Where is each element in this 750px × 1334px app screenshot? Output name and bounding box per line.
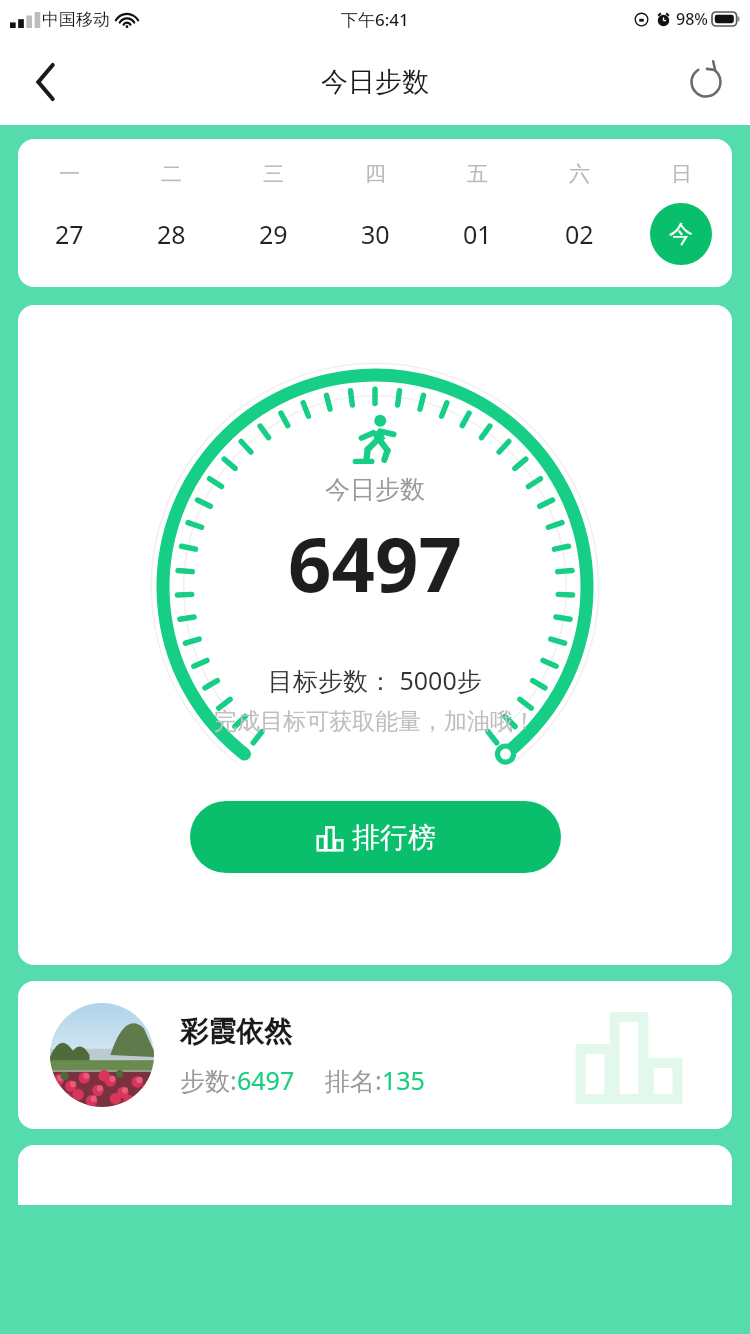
staticText: 6497 xyxy=(237,1063,295,1097)
staticText: 一 xyxy=(59,161,80,187)
button[interactable]: 三 xyxy=(222,161,324,265)
staticText: 今日步数 xyxy=(325,474,425,505)
staticText: 135 xyxy=(382,1063,425,1097)
staticText: 三 xyxy=(263,161,284,187)
staticText: 今 xyxy=(669,219,693,249)
staticText: 六 xyxy=(569,161,590,187)
staticText: 彩霞依然 xyxy=(180,1014,292,1049)
staticText: 完成目标可获取能量，加油哦！ xyxy=(214,707,536,736)
staticText: 目标步数： 5000步 xyxy=(268,663,482,697)
button[interactable]: 六 xyxy=(528,161,630,265)
button[interactable]: 日 xyxy=(630,161,732,265)
staticText: 01 xyxy=(463,217,492,251)
staticText: 02 xyxy=(565,217,594,251)
staticText: 五 xyxy=(467,161,488,187)
staticText: 排行榜 xyxy=(352,820,436,855)
staticText: 27 xyxy=(55,217,84,251)
staticText: 中国移动 xyxy=(42,9,110,30)
staticText: 98% xyxy=(676,8,708,30)
button[interactable]: 二 xyxy=(120,161,222,265)
button[interactable]: 一 xyxy=(18,161,120,265)
staticText: 日 xyxy=(671,161,692,187)
staticText: 29 xyxy=(259,217,288,251)
button[interactable]: 彩霞依然 xyxy=(18,981,732,1129)
button[interactable]: Back xyxy=(18,54,74,110)
staticText: 今日步数 xyxy=(321,65,429,99)
staticText: 二 xyxy=(161,161,182,187)
staticText: 下午6:41 xyxy=(341,8,409,31)
button[interactable]: 四 xyxy=(324,161,426,265)
staticText: 四 xyxy=(365,161,386,187)
staticText: 30 xyxy=(361,217,390,251)
staticText: 步数: xyxy=(180,1063,237,1097)
button[interactable]: Refresh xyxy=(678,54,734,110)
staticText: 6497 xyxy=(288,511,462,615)
button[interactable]: 排行榜 xyxy=(190,801,561,873)
staticText: 排名: xyxy=(325,1063,382,1097)
button[interactable]: 五 xyxy=(426,161,528,265)
staticText: 28 xyxy=(157,217,186,251)
